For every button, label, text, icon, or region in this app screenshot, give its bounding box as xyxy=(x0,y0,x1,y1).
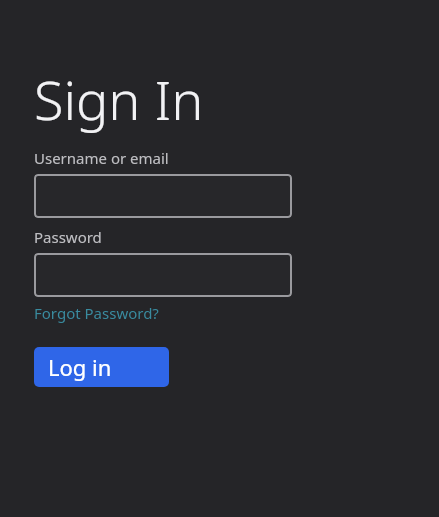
staticText: Sign In xyxy=(34,62,204,136)
staticText: Forgot Password? xyxy=(34,303,159,323)
button[interactable]: Log in xyxy=(34,347,169,387)
staticText: Password xyxy=(34,227,102,247)
staticText: Log in xyxy=(48,352,112,382)
button[interactable]: Username or email xyxy=(34,174,292,218)
button[interactable]: Forgot Password? xyxy=(34,303,159,323)
button[interactable]: Password xyxy=(34,253,292,297)
staticText: Username or email xyxy=(34,148,169,168)
